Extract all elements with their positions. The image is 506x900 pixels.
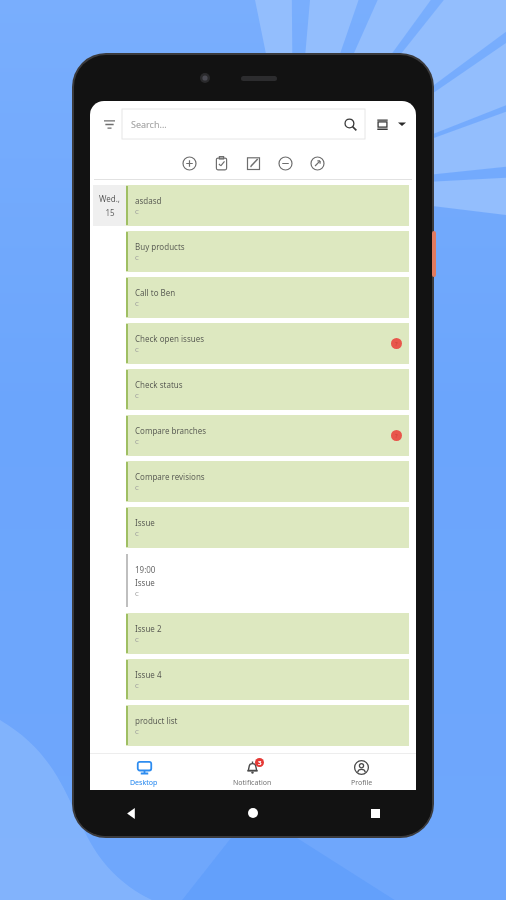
staticText: Check open issues (135, 333, 205, 344)
staticText: C (135, 636, 139, 644)
staticText: C (135, 254, 139, 262)
staticText: Buy products (135, 241, 185, 252)
staticText: C (135, 728, 139, 736)
staticText: asdasd (135, 195, 162, 206)
staticText: product list (135, 715, 178, 726)
staticText: Issue (135, 517, 155, 528)
button[interactable]: Check status (126, 369, 409, 410)
button[interactable]: Issue (126, 507, 409, 548)
button[interactable]: More (394, 111, 410, 137)
staticText: 3 (258, 759, 262, 767)
button[interactable]: Issue 2 (126, 613, 409, 654)
button[interactable]: Buy products (126, 231, 409, 272)
staticText: Desktop (130, 778, 158, 788)
button[interactable]: product list (126, 705, 409, 746)
staticText: 19:00 (135, 564, 156, 575)
button[interactable]: Tasks (210, 152, 232, 174)
staticText: C (135, 682, 139, 690)
button[interactable]: Layers (370, 111, 394, 137)
button[interactable]: Compare branches (126, 415, 409, 456)
button[interactable]: asdasd (126, 185, 409, 226)
button[interactable]: Home (240, 800, 266, 826)
button[interactable]: Back (118, 800, 144, 826)
staticText: Issue (135, 577, 155, 588)
staticText: ? (395, 432, 398, 440)
staticText: C (135, 392, 139, 400)
button[interactable]: Filter (96, 111, 122, 137)
staticText: C (135, 590, 139, 598)
button[interactable]: Remove (274, 152, 296, 174)
button[interactable]: Recents (362, 800, 388, 826)
staticText: Notification (233, 778, 272, 788)
button[interactable]: 3 (198, 754, 307, 794)
staticText: C (135, 438, 139, 446)
button[interactable]: Issue 4 (126, 659, 409, 700)
staticText: C (135, 346, 139, 354)
staticText: ? (395, 340, 398, 348)
button[interactable]: Call to Ben (126, 277, 409, 318)
button[interactable]: Profile (307, 754, 416, 794)
staticText: Call to Ben (135, 287, 176, 298)
staticText: Profile (351, 778, 373, 788)
button[interactable]: Open (306, 152, 328, 174)
staticText: Wed., (99, 193, 120, 204)
staticText: Issue 2 (135, 623, 162, 634)
button[interactable]: Desktop (90, 754, 198, 794)
staticText: C (135, 208, 139, 216)
staticText: C (135, 530, 139, 538)
button[interactable]: Search... (122, 109, 365, 139)
button[interactable]: Add (178, 152, 200, 174)
button[interactable]: 19:00 (126, 553, 409, 608)
button[interactable]: Check open issues (126, 323, 409, 364)
staticText: Issue 4 (135, 669, 162, 680)
staticText: C (135, 300, 139, 308)
button[interactable]: Edit (242, 152, 264, 174)
staticText: Compare branches (135, 425, 207, 436)
staticText: Check status (135, 379, 183, 390)
staticText: Search... (131, 118, 167, 130)
button[interactable]: Compare revisions (126, 461, 409, 502)
staticText: Compare revisions (135, 471, 205, 482)
staticText: 15 (105, 207, 115, 218)
staticText: C (135, 484, 139, 492)
